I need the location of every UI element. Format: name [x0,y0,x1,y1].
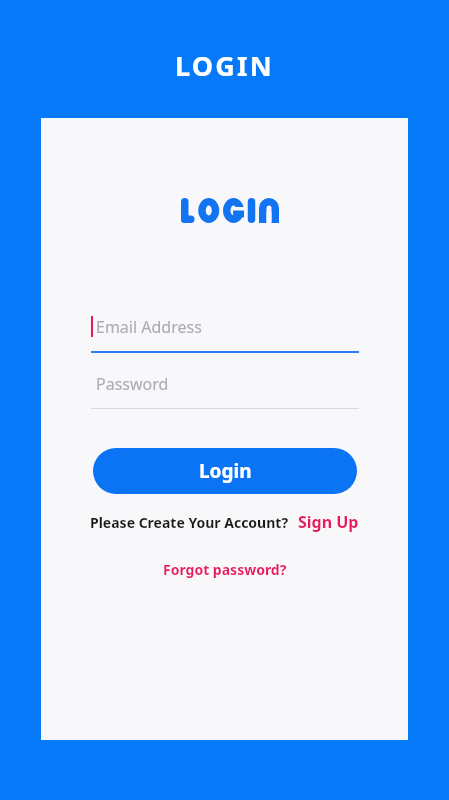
staticText: Login [199,458,252,484]
staticText: Forgot password? [163,560,287,579]
staticText: Please Create Your Account? [90,513,289,532]
button[interactable]: Login [93,448,357,494]
button[interactable]: Email Address [91,307,359,353]
staticText: Email Address [96,316,202,338]
button[interactable]: Forgot password? [163,560,287,579]
staticText: Password [96,373,169,395]
staticText: LOGIN [175,47,274,84]
staticText: Sign Up [298,511,359,533]
button[interactable]: Sign Up [298,511,359,533]
button[interactable]: Password [91,367,359,409]
